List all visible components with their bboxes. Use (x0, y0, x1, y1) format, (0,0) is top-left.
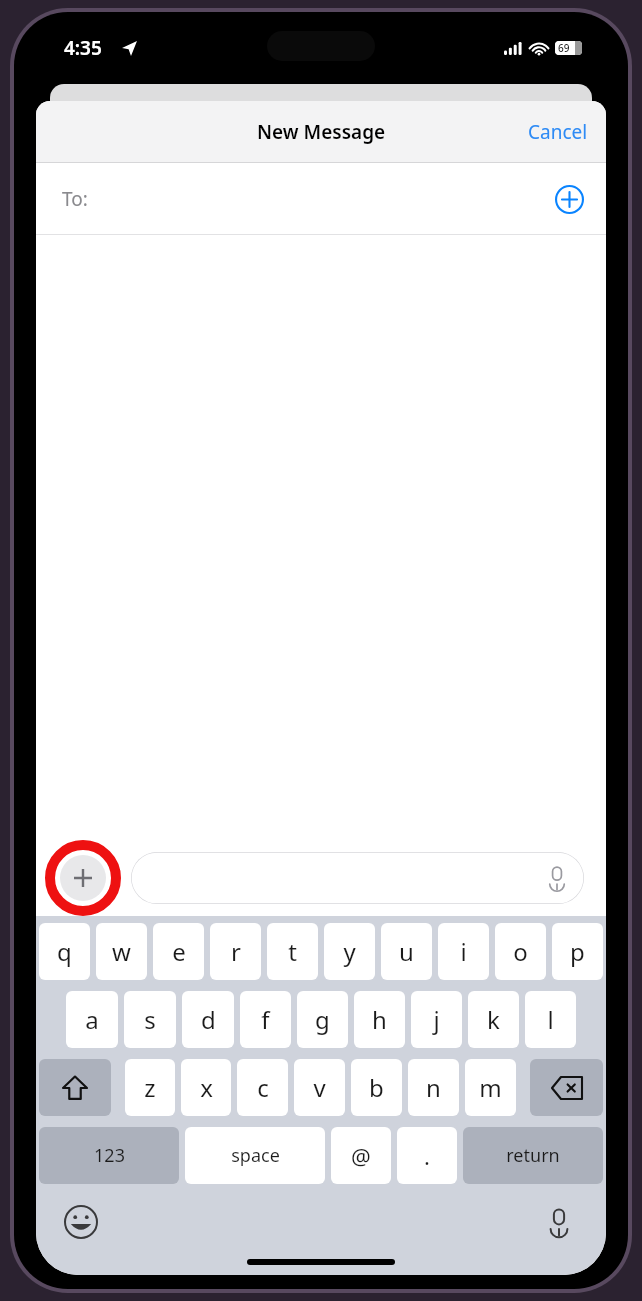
button[interactable]: n (408, 1059, 459, 1116)
button[interactable]: u (381, 923, 432, 980)
staticText: g (315, 1003, 330, 1036)
staticText: t (288, 935, 297, 968)
staticText: u (399, 935, 414, 968)
staticText: v (313, 1071, 326, 1104)
button[interactable]: Dictation (538, 1201, 580, 1243)
button[interactable]: s (124, 991, 176, 1048)
staticText: e (172, 935, 186, 968)
staticText: o (513, 935, 528, 968)
button[interactable]: Add contact (548, 178, 590, 220)
staticText: r (231, 935, 241, 968)
staticText: 4:35 (64, 35, 102, 61)
button[interactable]: More options (38, 840, 128, 916)
button[interactable]: m (465, 1059, 516, 1116)
button[interactable]: Shift (39, 1059, 111, 1116)
button[interactable]: 123 (39, 1127, 179, 1184)
button[interactable]: h (354, 991, 405, 1048)
button[interactable]: v (294, 1059, 345, 1116)
button[interactable]: o (495, 923, 546, 980)
staticText: h (372, 1003, 387, 1036)
button[interactable]: . (397, 1127, 457, 1184)
staticText: x (200, 1071, 213, 1104)
staticText: s (144, 1003, 156, 1036)
button[interactable]: p (552, 923, 603, 980)
staticText: d (201, 1003, 216, 1036)
button[interactable]: q (39, 923, 90, 980)
staticText: b (369, 1071, 384, 1104)
button[interactable]: i (438, 923, 489, 980)
staticText: . (424, 1141, 430, 1171)
button[interactable]: b (351, 1059, 402, 1116)
button[interactable]: g (297, 991, 348, 1048)
staticText: q (57, 935, 72, 968)
button[interactable]: c (237, 1059, 288, 1116)
staticText: f (261, 1003, 270, 1036)
button[interactable]: Cancel (510, 109, 606, 155)
button[interactable]: l (525, 991, 576, 1048)
staticText: j (433, 1003, 440, 1036)
staticText: p (570, 935, 585, 968)
staticText: @ (351, 1141, 371, 1171)
button[interactable]: Dictate (131, 852, 584, 904)
button[interactable]: Dictate (544, 865, 570, 891)
button[interactable]: t (267, 923, 318, 980)
staticText: Cancel (528, 119, 588, 145)
button[interactable]: f (240, 991, 291, 1048)
button[interactable]: return (463, 1127, 603, 1184)
staticText: y (343, 935, 356, 968)
staticText: New Message (257, 119, 386, 145)
staticText: To: (62, 186, 88, 212)
staticText: return (506, 1143, 560, 1168)
staticText: a (85, 1003, 99, 1036)
button[interactable]: e (153, 923, 204, 980)
button[interactable]: Backspace (530, 1059, 603, 1116)
button[interactable]: y (324, 923, 375, 980)
button[interactable]: space (185, 1127, 325, 1184)
button[interactable]: To: (36, 163, 606, 235)
staticText: 123 (94, 1143, 125, 1168)
button[interactable]: @ (331, 1127, 391, 1184)
staticText: space (231, 1143, 280, 1168)
button[interactable]: k (468, 991, 519, 1048)
staticText: z (144, 1071, 156, 1104)
staticText: n (426, 1071, 441, 1104)
button[interactable]: x (181, 1059, 231, 1116)
staticText: 69 (558, 41, 570, 55)
button[interactable]: z (125, 1059, 175, 1116)
staticText: m (479, 1071, 502, 1104)
button[interactable]: r (210, 923, 261, 980)
staticText: w (112, 935, 131, 968)
button[interactable]: d (182, 991, 234, 1048)
staticText: k (487, 1003, 500, 1036)
button[interactable]: j (411, 991, 462, 1048)
staticText: i (460, 935, 467, 968)
staticText: c (257, 1071, 269, 1104)
button[interactable]: Emoji (60, 1201, 102, 1243)
button[interactable]: w (96, 923, 147, 980)
staticText: l (547, 1003, 554, 1036)
button[interactable]: a (66, 991, 118, 1048)
